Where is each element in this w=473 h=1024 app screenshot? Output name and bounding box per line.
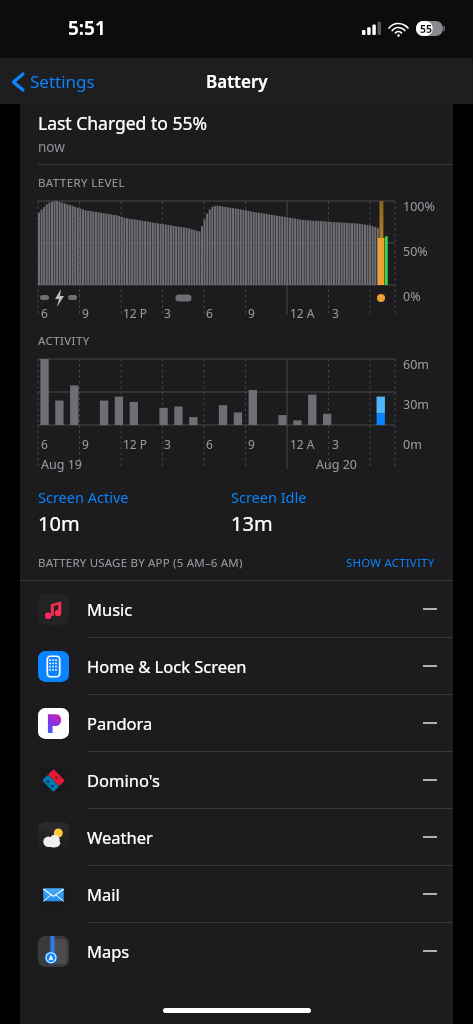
other: No usage — [423, 661, 437, 671]
staticText: 50% — [403, 243, 428, 260]
other: No usage — [423, 718, 437, 728]
button[interactable]: Mail — [20, 866, 453, 922]
staticText: 0m — [403, 436, 422, 453]
staticText: Settings — [30, 70, 95, 93]
button[interactable]: SHOW ACTIVITY — [344, 553, 437, 573]
staticText: SHOW ACTIVITY — [346, 555, 435, 571]
other: No usage — [423, 604, 437, 614]
staticText: ACTIVITY — [38, 333, 90, 349]
staticText: 3 — [164, 436, 171, 452]
staticText: 6 — [41, 436, 48, 452]
staticText: 0% — [403, 288, 421, 305]
staticText: 55 — [420, 22, 433, 36]
staticText: 9 — [248, 305, 255, 321]
staticText: 60m — [403, 356, 429, 373]
staticText: Aug 19 — [41, 456, 82, 473]
button[interactable]: Domino's — [20, 752, 453, 808]
staticText: 3 — [332, 436, 339, 452]
staticText: 13m — [231, 510, 273, 537]
button[interactable]: Music — [20, 581, 453, 637]
staticText: 3 — [164, 305, 171, 321]
staticText: 3 — [332, 305, 339, 321]
staticText: Domino's — [87, 769, 160, 791]
staticText: Screen Active — [38, 487, 129, 507]
staticText: Aug 20 — [316, 456, 357, 473]
other: No usage — [423, 832, 437, 842]
staticText: 10m — [38, 510, 80, 537]
staticText: 9 — [82, 305, 89, 321]
staticText: Battery — [206, 70, 268, 93]
staticText: BATTERY USAGE BY APP (5 AM–6 AM) — [38, 555, 243, 571]
other: No usage — [423, 775, 437, 785]
other: No usage — [423, 889, 437, 899]
staticText: Home & Lock Screen — [87, 655, 247, 677]
staticText: 5:51 — [68, 15, 106, 41]
staticText: 12 P — [123, 305, 148, 321]
button[interactable]: Settings — [8, 66, 99, 97]
button[interactable]: Weather — [20, 809, 453, 865]
staticText: BATTERY LEVEL — [38, 175, 126, 191]
staticText: Last Charged to 55% — [38, 111, 207, 135]
staticText: Screen Idle — [231, 487, 307, 507]
staticText: 30m — [403, 396, 429, 413]
staticText: 12 P — [123, 436, 148, 452]
staticText: Music — [87, 598, 133, 620]
button[interactable]: Pandora — [20, 695, 453, 751]
staticText: Maps — [87, 940, 130, 962]
staticText: now — [38, 138, 65, 156]
button[interactable]: Home & Lock Screen — [20, 638, 453, 694]
staticText: 9 — [248, 436, 255, 452]
staticText: Pandora — [87, 712, 153, 734]
other: No usage — [423, 946, 437, 956]
staticText: Weather — [87, 826, 153, 848]
staticText: 6 — [206, 305, 213, 321]
staticText: 12 A — [290, 436, 315, 452]
staticText: 6 — [206, 436, 213, 452]
button[interactable]: Maps — [20, 923, 453, 979]
staticText: 6 — [41, 305, 48, 321]
staticText: 9 — [82, 436, 89, 452]
staticText: Mail — [87, 883, 120, 905]
staticText: 12 A — [290, 305, 315, 321]
staticText: 100% — [403, 198, 435, 215]
